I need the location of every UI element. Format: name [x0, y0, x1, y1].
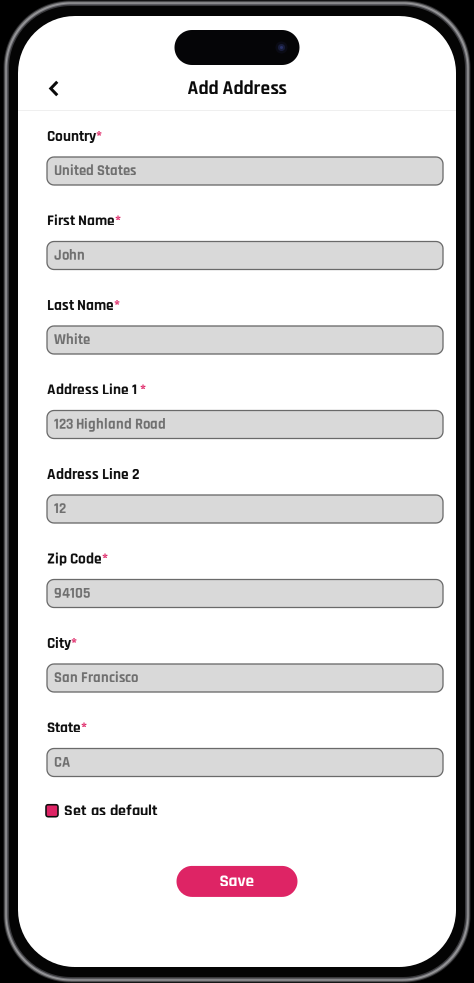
staticText: Zip Code	[47, 549, 102, 569]
button[interactable]: 12	[47, 495, 443, 523]
staticText: United States	[54, 162, 136, 180]
staticText: Address Line 2	[47, 465, 140, 484]
staticText: Save	[219, 870, 254, 892]
staticText: Country	[47, 127, 96, 146]
staticText: *	[71, 634, 77, 653]
staticText: Last Name	[47, 296, 114, 315]
button[interactable]: Save	[176, 866, 297, 897]
button[interactable]: Set as default	[18, 800, 158, 821]
staticText: State	[47, 718, 81, 738]
button[interactable]: United States	[47, 157, 443, 185]
staticText: CA	[54, 753, 70, 772]
staticText: Add Address	[187, 76, 286, 101]
staticText: *	[96, 127, 102, 146]
button[interactable]: 94105	[47, 579, 443, 607]
staticText: *	[114, 296, 120, 315]
button[interactable]: 123 Highland Road	[47, 410, 443, 438]
button[interactable]: White	[47, 326, 443, 354]
staticText: John	[54, 246, 85, 265]
staticText: San Francisco	[54, 669, 138, 687]
button[interactable]: John	[47, 241, 443, 269]
staticText: First Name	[47, 211, 115, 231]
staticText: *	[140, 380, 146, 400]
button[interactable]: CA	[47, 748, 443, 776]
staticText: *	[115, 211, 121, 231]
staticText: 123 Highland Road	[54, 415, 166, 434]
button[interactable]: Back	[18, 68, 76, 108]
staticText: White	[54, 331, 90, 349]
staticText: 94105	[54, 584, 90, 603]
staticText: *	[81, 718, 87, 738]
staticText: Address Line 1	[47, 380, 140, 400]
staticText: Set as default	[64, 800, 158, 821]
staticText: 12	[54, 500, 66, 518]
button[interactable]: San Francisco	[47, 664, 443, 692]
staticText: City	[47, 634, 71, 653]
staticText: *	[102, 549, 108, 569]
